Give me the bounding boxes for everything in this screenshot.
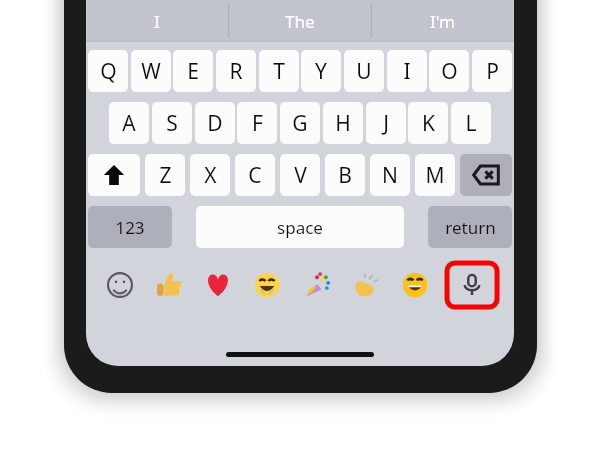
staticText: P	[486, 57, 499, 86]
button[interactable]	[398, 268, 432, 302]
button[interactable]: I	[86, 0, 228, 42]
staticText: C	[248, 161, 262, 190]
button[interactable]: Backspace	[460, 154, 512, 196]
staticText: Q	[100, 57, 117, 86]
button[interactable]: I	[387, 50, 427, 92]
button[interactable]: J	[366, 102, 406, 144]
staticText: L	[465, 109, 477, 138]
button[interactable]	[300, 268, 334, 302]
staticText: Y	[315, 57, 327, 86]
staticText: K	[422, 109, 435, 138]
staticText: J	[383, 109, 389, 138]
staticText: U	[356, 57, 372, 86]
button[interactable]: Shift	[88, 154, 140, 196]
button[interactable]: N	[370, 154, 410, 196]
staticText: X	[204, 161, 217, 190]
button[interactable]: L	[451, 102, 491, 144]
staticText: O	[441, 57, 458, 86]
button[interactable]: M	[415, 154, 455, 196]
button[interactable]: W	[131, 50, 171, 92]
button[interactable]: 123	[88, 206, 172, 248]
button[interactable]: I'm	[371, 0, 514, 42]
button[interactable]: Y	[301, 50, 341, 92]
button[interactable]: The	[228, 0, 371, 42]
staticText: I	[154, 10, 160, 33]
staticText: E	[187, 57, 199, 86]
button[interactable]: U	[344, 50, 384, 92]
button[interactable]: Dictation microphone	[447, 263, 497, 307]
button[interactable]: D	[195, 102, 235, 144]
button[interactable]: V	[280, 154, 320, 196]
button[interactable]: A	[109, 102, 149, 144]
button[interactable]	[250, 268, 284, 302]
button[interactable]: H	[323, 102, 363, 144]
staticText: N	[382, 161, 398, 190]
staticText: F	[252, 109, 263, 138]
staticText: A	[122, 109, 136, 138]
button[interactable]: Q	[88, 50, 128, 92]
staticText: H	[335, 109, 351, 138]
staticText: T	[273, 57, 285, 86]
button[interactable]: Emoji keyboard	[103, 268, 137, 302]
button[interactable]	[201, 268, 235, 302]
staticText: R	[229, 57, 243, 86]
staticText: V	[294, 161, 307, 190]
button[interactable]: O	[429, 50, 469, 92]
staticText: M	[425, 161, 445, 190]
button[interactable]: return	[428, 206, 512, 248]
button[interactable]	[152, 268, 186, 302]
button[interactable]: E	[173, 50, 213, 92]
button[interactable]	[349, 268, 383, 302]
button[interactable]: X	[190, 154, 230, 196]
button[interactable]: T	[259, 50, 299, 92]
button[interactable]: G	[280, 102, 320, 144]
staticText: space	[277, 216, 323, 239]
staticText: W	[141, 57, 161, 86]
staticText: S	[166, 109, 178, 138]
staticText: return	[445, 216, 496, 239]
button[interactable]: C	[235, 154, 275, 196]
staticText: G	[292, 109, 308, 138]
button[interactable]: P	[472, 50, 512, 92]
button[interactable]: F	[237, 102, 277, 144]
staticText: The	[285, 10, 315, 33]
button[interactable]: Z	[145, 154, 185, 196]
staticText: Z	[159, 161, 172, 190]
button[interactable]: S	[152, 102, 192, 144]
button[interactable]: K	[408, 102, 448, 144]
button[interactable]: B	[325, 154, 365, 196]
staticText: 123	[115, 216, 145, 239]
button[interactable]: space	[196, 206, 404, 248]
staticText: D	[207, 109, 223, 138]
staticText: B	[338, 161, 352, 190]
staticText: I'm	[430, 10, 455, 33]
button[interactable]: R	[216, 50, 256, 92]
staticText: I	[403, 57, 411, 86]
